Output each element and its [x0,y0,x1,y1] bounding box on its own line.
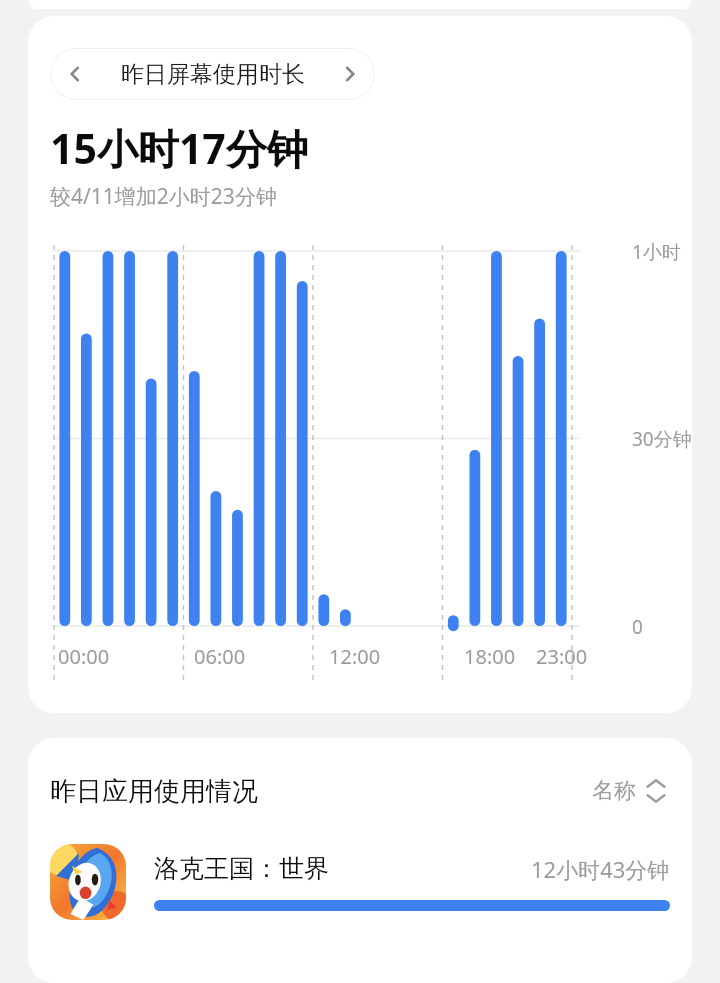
staticText: 30分钟 [632,426,692,452]
staticText: 06:00 [194,643,246,670]
staticText: 23:00 [536,643,588,670]
staticText: 18:00 [464,643,516,670]
button[interactable]: 名称 [588,772,670,810]
staticText: 15小时17分钟 [50,120,308,176]
staticText: 昨日应用使用情况 [50,775,258,808]
staticText: 12:00 [329,643,381,670]
button[interactable]: Previous day [50,48,375,100]
staticText: 昨日屏幕使用时长 [121,60,305,89]
button[interactable]: Next day [325,48,375,100]
staticText: 1小时 [632,239,681,265]
staticText: 名称 [592,777,636,805]
staticText: 00:00 [58,643,110,670]
staticText: 洛克王国：世界 [154,853,329,884]
staticText: 较4/11增加2小时23分钟 [50,182,277,211]
staticText: 12小时43分钟 [531,854,670,884]
button[interactable]: Previous day [50,48,100,100]
button[interactable]: 洛克王国：世界 [50,844,670,920]
staticText: 0 [632,614,643,640]
other: Sort order [646,776,666,806]
